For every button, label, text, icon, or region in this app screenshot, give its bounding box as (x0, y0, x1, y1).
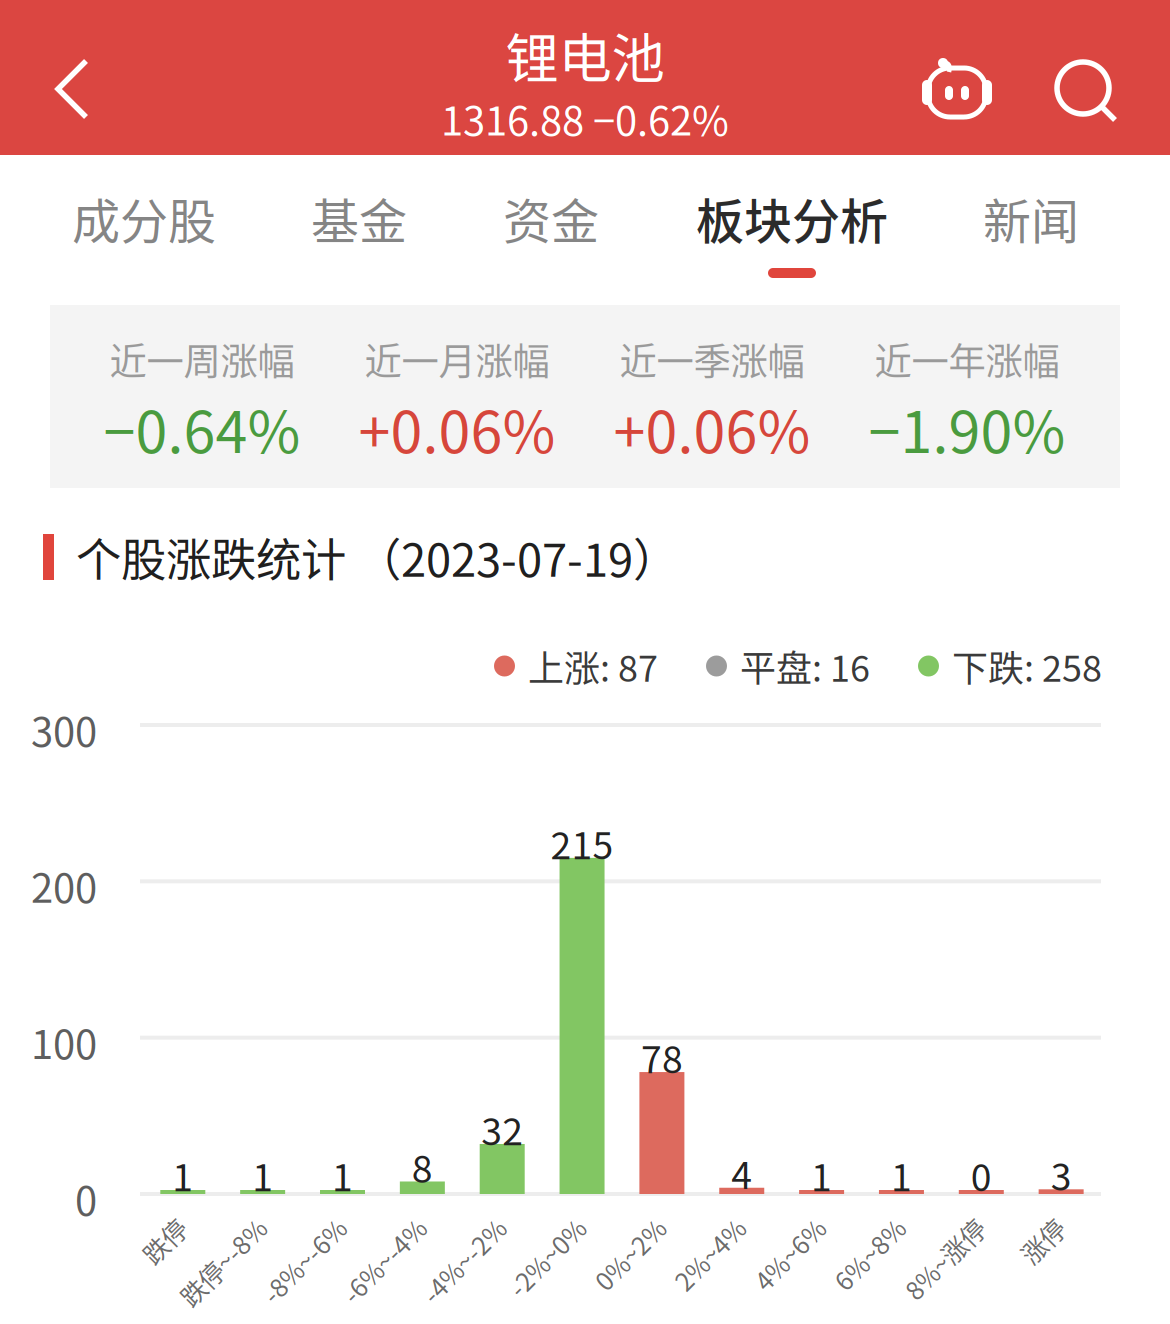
staticText: 近一季涨幅 (619, 332, 804, 386)
staticText: 新闻 (983, 183, 1079, 253)
button[interactable]: 基金 (274, 155, 444, 305)
button[interactable]: 成分股 (34, 155, 254, 305)
staticText: 平盘: 16 (740, 640, 870, 692)
staticText: 锂电池 (505, 16, 664, 94)
button[interactable]: 板块分析 (659, 155, 925, 305)
staticText: 3 (1051, 1147, 1072, 1201)
staticText: −0.64% (103, 386, 300, 469)
staticText: -4%~-2% (395, 1205, 501, 1241)
staticText: 215 (550, 816, 613, 870)
staticText: 200 (31, 856, 97, 914)
staticText: -6%~-4% (315, 1205, 421, 1241)
staticText: +0.06% (358, 386, 555, 469)
staticText: 1 (891, 1148, 912, 1202)
staticText: 2%~4% (653, 1205, 741, 1241)
staticText: −1.90% (868, 386, 1065, 469)
staticText: +0.06% (613, 386, 810, 469)
staticText: 近一月涨幅 (364, 332, 549, 386)
staticText: 8%~涨停 (879, 1205, 980, 1241)
staticText: 1 (252, 1148, 273, 1202)
staticText: 1 (172, 1148, 193, 1202)
staticText: 个股涨跌统计 （2023-07-19） (76, 524, 678, 590)
staticText: 跌停 (132, 1205, 182, 1241)
staticText: 涨停 (1010, 1205, 1060, 1241)
staticText: 上涨: 87 (528, 640, 658, 692)
staticText: 资金 (503, 183, 599, 253)
staticText: 跌停~-8% (152, 1205, 262, 1241)
button[interactable]: 资金 (466, 155, 636, 305)
staticText: 32 (481, 1102, 523, 1156)
staticText: 成分股 (72, 183, 216, 253)
staticText: 近一年涨幅 (874, 332, 1059, 386)
staticText: 8 (412, 1139, 433, 1194)
staticText: 下跌: 258 (952, 640, 1102, 692)
staticText: -2%~0% (484, 1205, 581, 1241)
staticText: 0 (971, 1148, 992, 1202)
staticText: 78 (641, 1030, 683, 1084)
staticText: 1 (811, 1148, 832, 1202)
staticText: 基金 (311, 183, 407, 253)
staticText: 1316.88 −0.62% (441, 89, 729, 147)
staticText: 0 (75, 1169, 97, 1227)
button[interactable]: 新闻 (946, 155, 1116, 305)
staticText: -8%~-6% (235, 1205, 341, 1241)
button[interactable]: AI assistant (905, 0, 1009, 155)
staticText: 300 (31, 700, 97, 758)
staticText: 100 (31, 1013, 97, 1071)
button[interactable]: Back (0, 0, 120, 155)
staticText: 4 (731, 1146, 752, 1200)
staticText: 板块分析 (696, 183, 888, 253)
button[interactable]: Search (1040, 0, 1151, 155)
staticText: 1 (332, 1148, 353, 1202)
staticText: 0%~2% (573, 1205, 661, 1241)
staticText: 6%~8% (812, 1205, 900, 1241)
staticText: 4%~6% (733, 1205, 821, 1241)
staticText: 近一周涨幅 (109, 332, 294, 386)
